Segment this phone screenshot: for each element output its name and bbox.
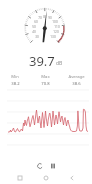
button[interactable]: Back [66,172,78,184]
button[interactable]: Average [61,74,92,87]
staticText: 40 [32,30,36,34]
staticText: 38.2 [11,81,20,87]
staticText: 70.8 [41,81,50,87]
staticText: 90 [48,16,52,20]
staticText: Average [68,74,85,80]
staticText: 70 [38,16,42,20]
button[interactable]: Reset [35,161,45,171]
staticText: 80 [43,15,47,19]
staticText: 38.6 [72,81,81,87]
staticText: 50 [32,25,36,29]
staticText: 60 [34,20,38,24]
staticText: dB [56,60,63,67]
staticText: Min [11,74,19,80]
button[interactable]: Max [30,74,61,87]
staticText: 100 [52,20,58,24]
staticText: 110 [54,25,60,29]
button[interactable]: Home [40,172,52,184]
staticText: 130 [50,35,56,39]
staticText: 39.7 [29,52,55,68]
button[interactable]: Min [0,74,30,87]
staticText: 30 [35,35,39,39]
button[interactable]: Recents [14,172,26,184]
button[interactable]: Pause [48,161,58,171]
staticText: 120 [53,30,59,34]
staticText: Max [41,74,50,80]
